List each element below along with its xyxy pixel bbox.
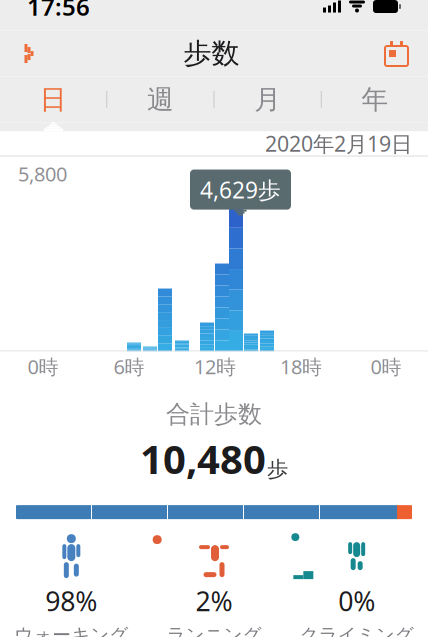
staticText: 2020年2月19日: [265, 129, 412, 158]
staticText: 週: [147, 83, 174, 116]
staticText: 98%: [45, 583, 97, 618]
button[interactable]: 日: [0, 70, 106, 129]
staticText: 17:56: [27, 0, 90, 22]
staticText: ランニング: [166, 623, 261, 637]
button[interactable]: 月: [214, 70, 321, 129]
staticText: 0時: [27, 353, 58, 380]
staticText: 5,800: [18, 160, 67, 187]
staticText: 合計歩数: [166, 399, 262, 429]
button[interactable]: 98%: [0, 533, 143, 637]
button[interactable]: 0%: [285, 533, 428, 637]
staticText: 4,629歩: [200, 174, 281, 205]
staticText: 年: [361, 83, 388, 116]
staticText: ウォーキング: [14, 623, 128, 637]
staticText: クライミング: [300, 623, 414, 637]
staticText: 18時: [280, 353, 322, 380]
staticText: 2%: [195, 583, 232, 618]
staticText: 10,480: [140, 432, 266, 485]
staticText: 0時: [370, 353, 401, 380]
button[interactable]: 戻る: [12, 33, 46, 73]
staticText: 歩: [267, 456, 288, 482]
staticText: 12時: [194, 353, 236, 380]
button[interactable]: 2%: [143, 533, 285, 637]
staticText: 6時: [113, 353, 144, 380]
staticText: 歩数: [183, 36, 239, 71]
staticText: 日: [40, 83, 67, 116]
staticText: 月: [254, 83, 281, 116]
button[interactable]: 年: [322, 70, 428, 129]
button[interactable]: 週: [107, 70, 213, 129]
button[interactable]: カレンダー: [377, 34, 416, 73]
staticText: 0%: [338, 583, 375, 618]
